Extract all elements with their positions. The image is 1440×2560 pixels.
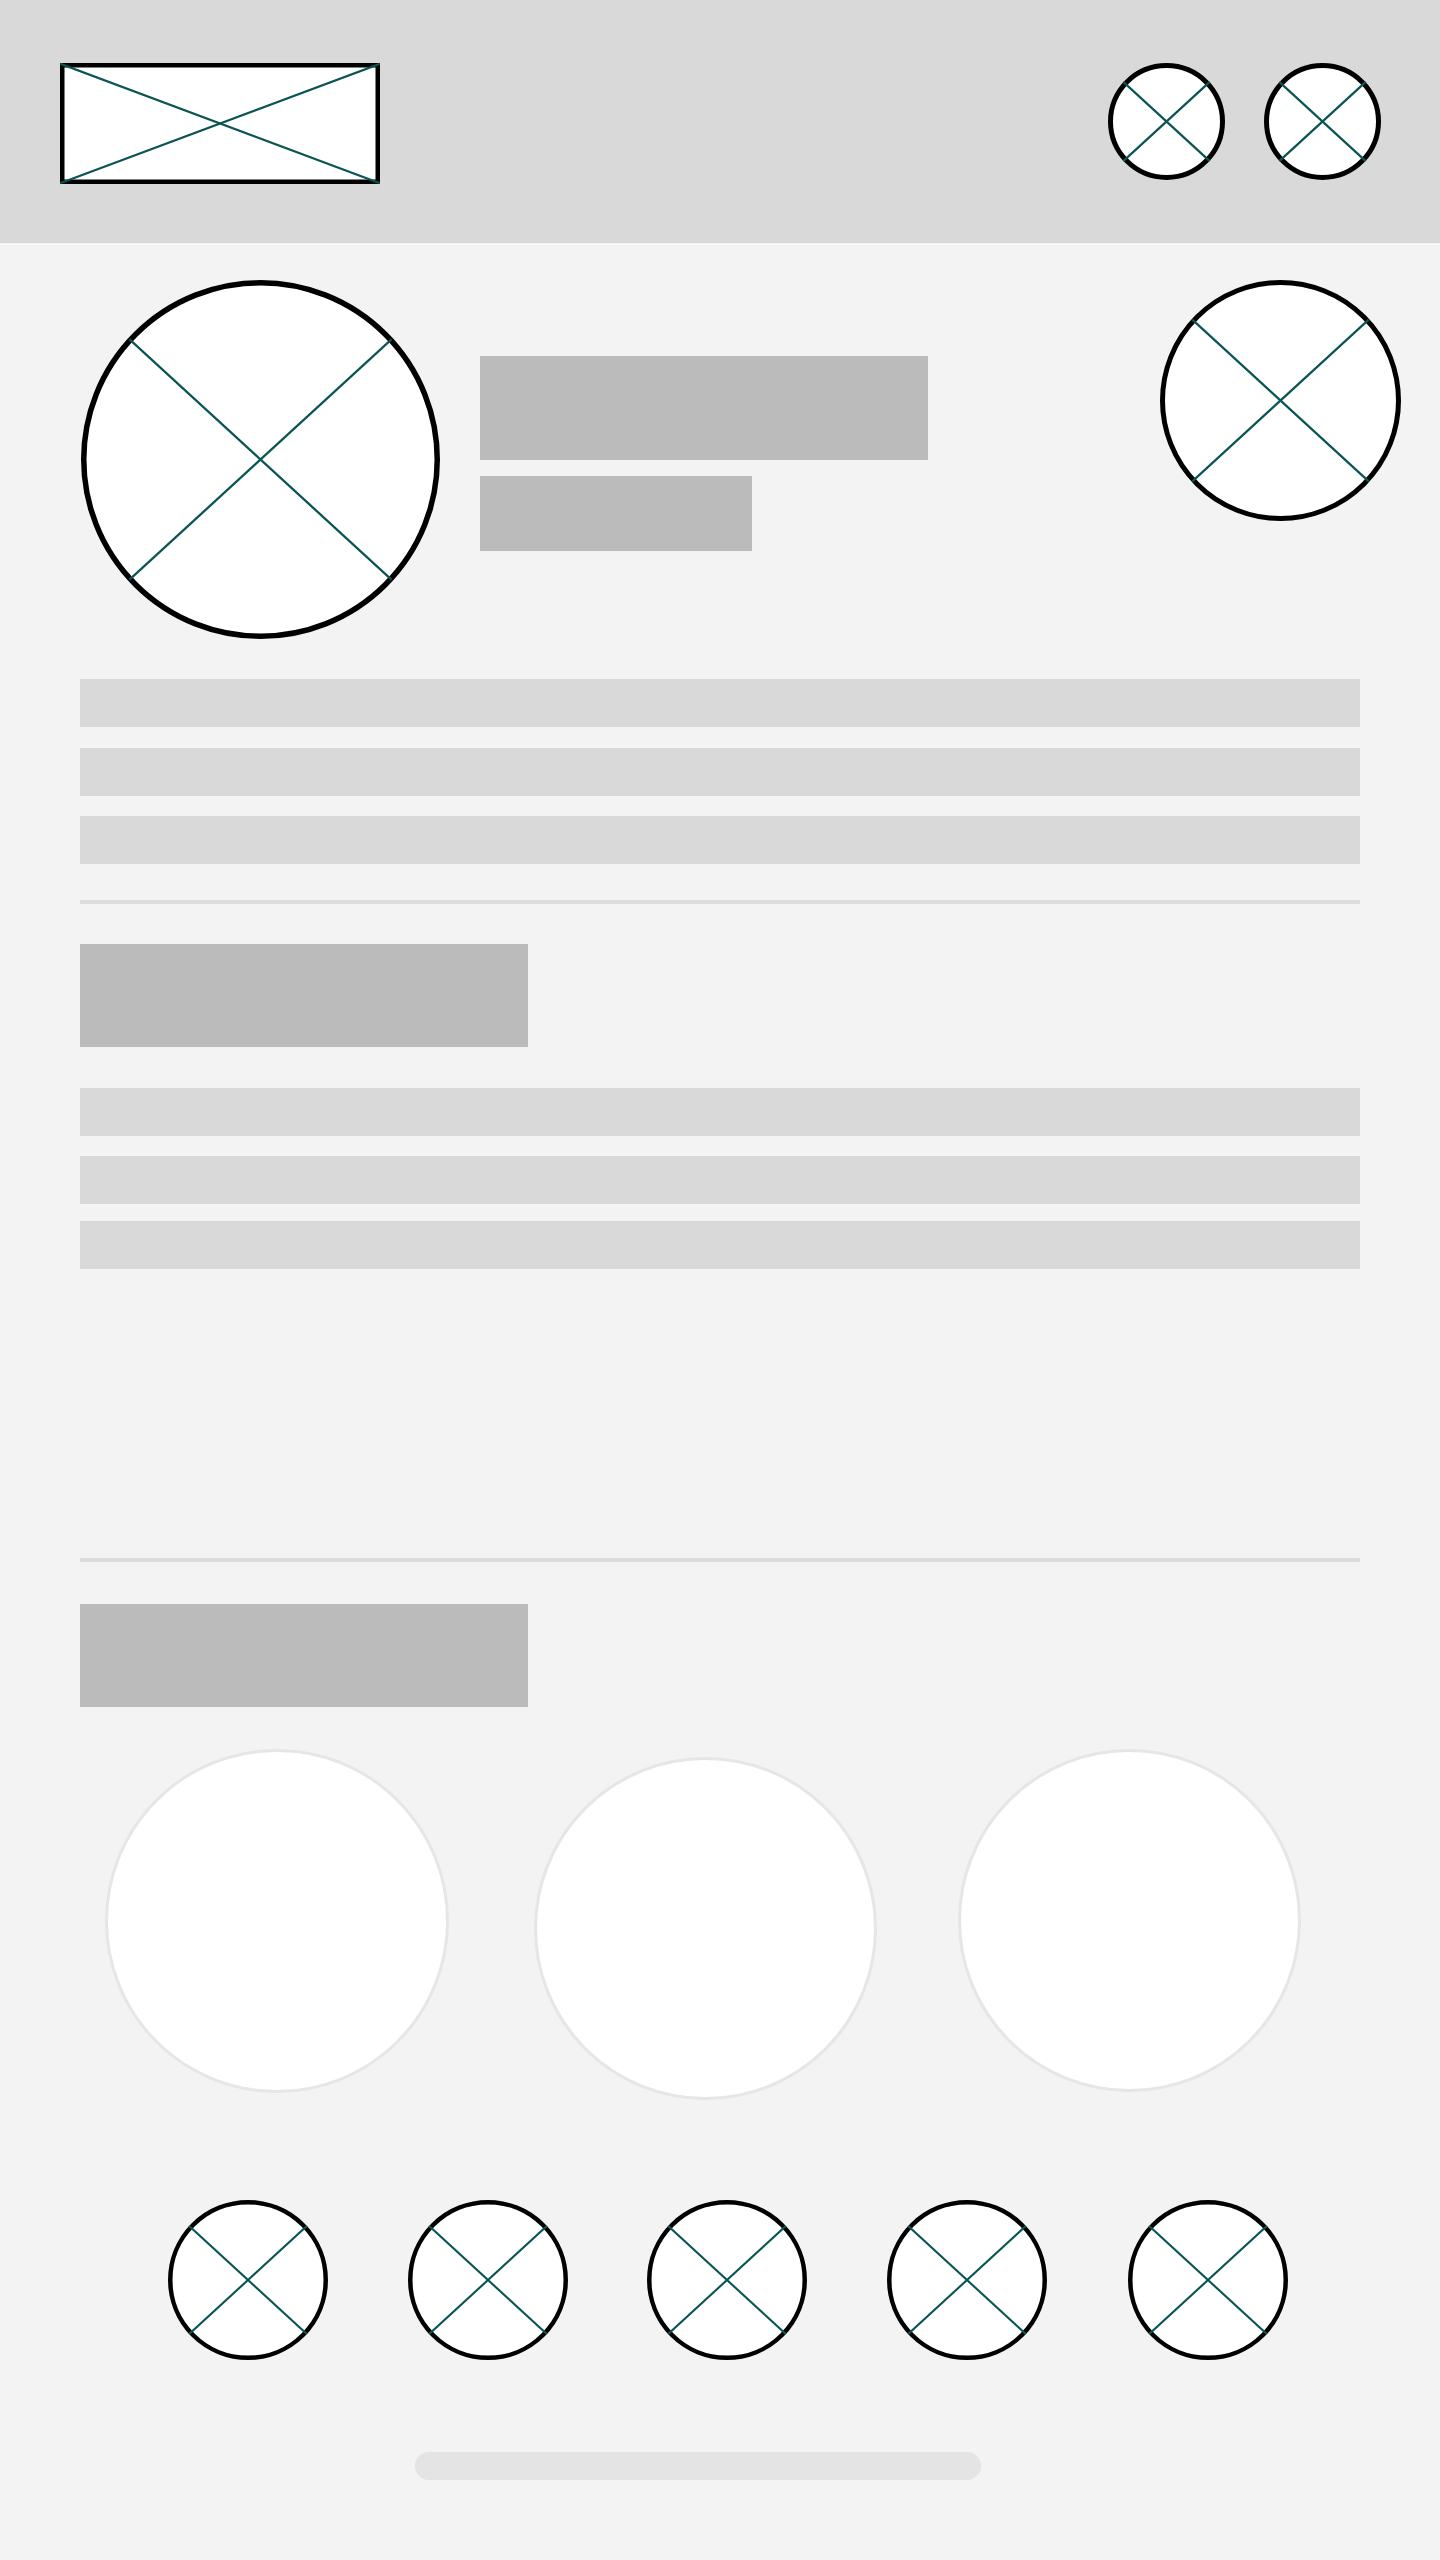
button[interactable]: Story 3 bbox=[958, 1749, 1301, 2092]
button[interactable]: Profile bbox=[1128, 2200, 1288, 2360]
button[interactable]: Profile photo bbox=[81, 280, 440, 639]
button[interactable]: Add bbox=[647, 2200, 807, 2360]
button[interactable]: Edit profile bbox=[1160, 280, 1401, 521]
button[interactable]: Story 2 bbox=[534, 1757, 877, 2100]
button[interactable]: Notifications bbox=[887, 2200, 1047, 2360]
button[interactable]: Home bbox=[168, 2200, 328, 2360]
button[interactable]: Search bbox=[1108, 63, 1225, 180]
button[interactable]: App logo bbox=[60, 63, 380, 184]
button[interactable]: More options bbox=[1264, 63, 1381, 180]
button[interactable]: Search bbox=[408, 2200, 568, 2360]
button[interactable]: Story 1 bbox=[105, 1749, 449, 2093]
